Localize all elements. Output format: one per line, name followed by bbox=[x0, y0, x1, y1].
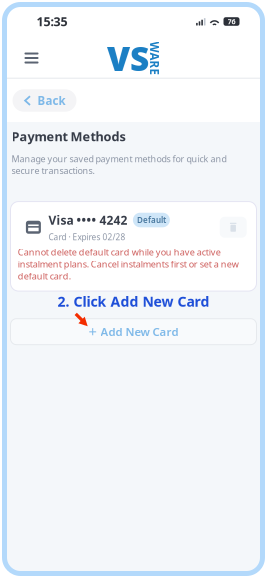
button[interactable]: Back bbox=[12, 89, 76, 112]
button[interactable]: Delete card bbox=[220, 217, 247, 238]
staticText: Back bbox=[37, 93, 65, 108]
staticText: 2. Click Add New Card bbox=[57, 292, 209, 311]
staticText: WARE bbox=[138, 50, 171, 66]
staticText: Card · Expires 02/28 bbox=[48, 231, 125, 242]
staticText: 15:35 bbox=[36, 13, 67, 30]
staticText: VS bbox=[107, 36, 149, 80]
staticText: Payment Methods bbox=[11, 128, 125, 145]
staticText: Default bbox=[137, 215, 166, 225]
staticText: Cannot delete default card while you hav… bbox=[18, 246, 239, 282]
staticText: 76 bbox=[227, 17, 235, 26]
staticText: + bbox=[88, 322, 96, 341]
staticText: Visa •••• 4242 bbox=[48, 212, 127, 228]
staticText: Add New Card bbox=[100, 324, 178, 339]
button[interactable]: + bbox=[10, 319, 256, 345]
button[interactable]: Menu bbox=[17, 44, 45, 72]
staticText: Manage your saved payment methods for qu… bbox=[11, 153, 226, 176]
